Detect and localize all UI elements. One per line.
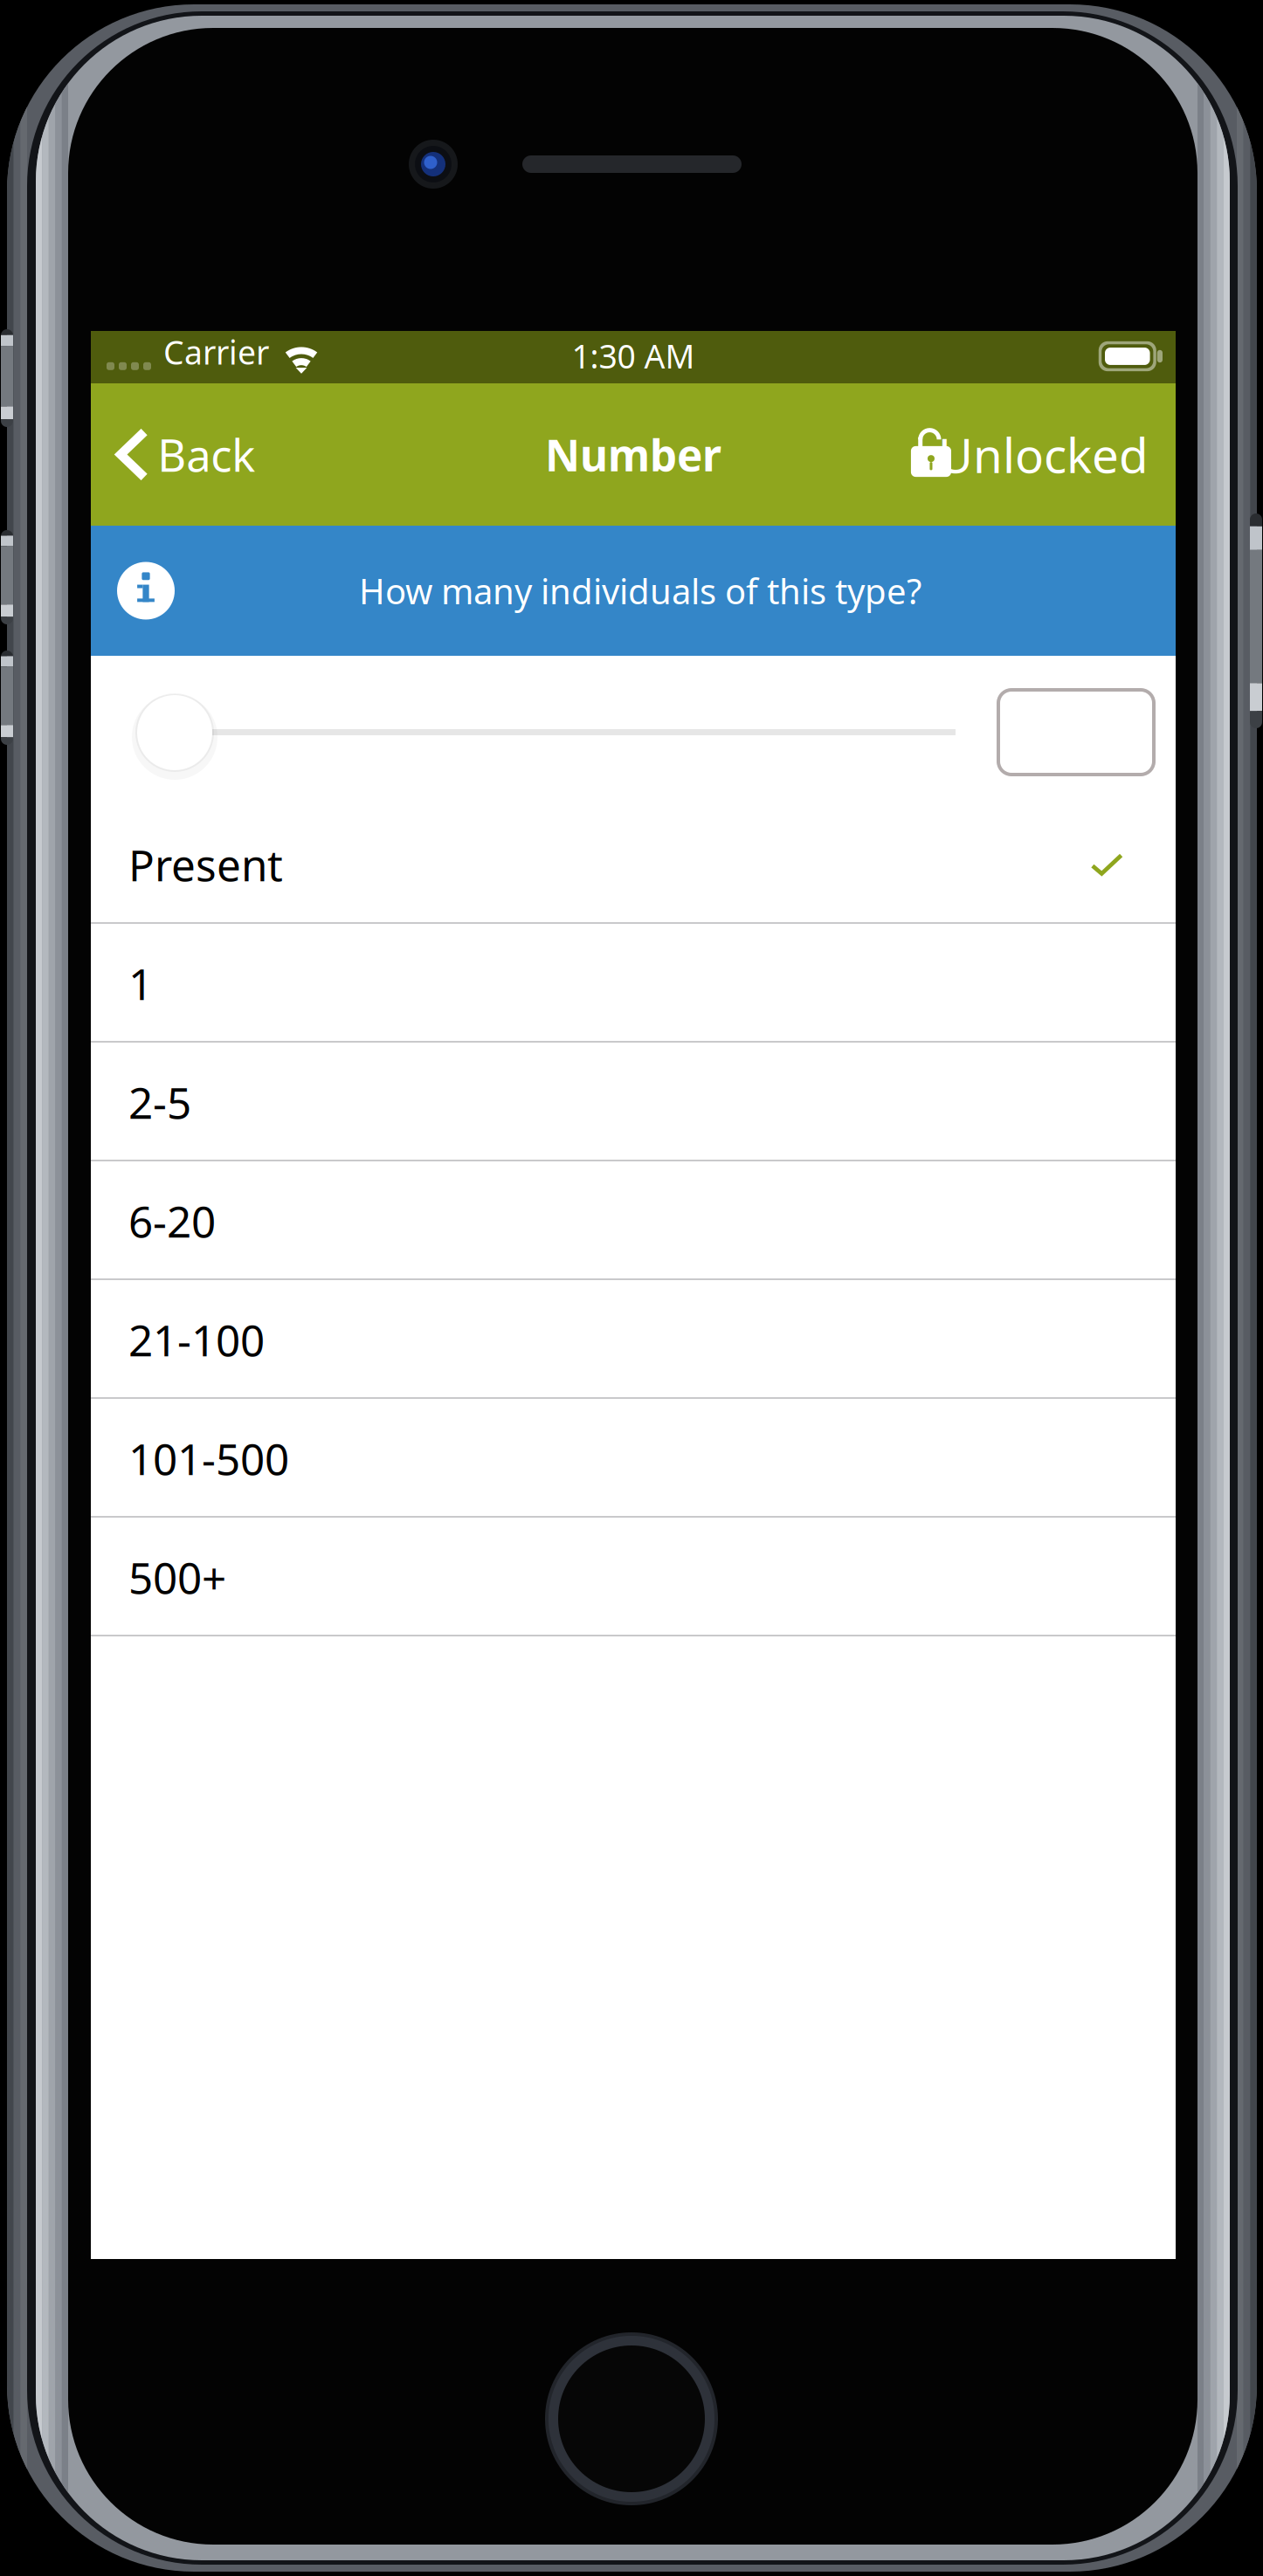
staticText: 1:30 AM (572, 334, 695, 377)
button[interactable]: Present (91, 805, 1176, 924)
staticText: Carrier (163, 330, 269, 374)
button[interactable]: 21-100 (91, 1280, 1176, 1399)
staticText: 500+ (128, 1548, 226, 1606)
staticText: 21-100 (128, 1311, 265, 1368)
button[interactable]: 1 (91, 924, 1176, 1043)
button[interactable]: 500+ (91, 1518, 1176, 1636)
button[interactable]: 6-20 (91, 1161, 1176, 1280)
button[interactable]: 101-500 (91, 1399, 1176, 1518)
staticText: 1 (128, 955, 153, 1012)
staticText: 101-500 (128, 1430, 289, 1487)
button[interactable]: 2-5 (91, 1043, 1176, 1161)
staticText: Back (157, 425, 255, 484)
button[interactable]: Unlocked (877, 383, 1176, 526)
button[interactable]: Back (91, 383, 276, 526)
staticText: 2-5 (128, 1073, 191, 1131)
staticText: How many individuals of this type? (359, 568, 921, 614)
staticText: Present (128, 836, 283, 893)
staticText: Number (545, 426, 721, 483)
staticText: Unlocked (938, 423, 1149, 486)
staticText: 6-20 (128, 1192, 216, 1249)
